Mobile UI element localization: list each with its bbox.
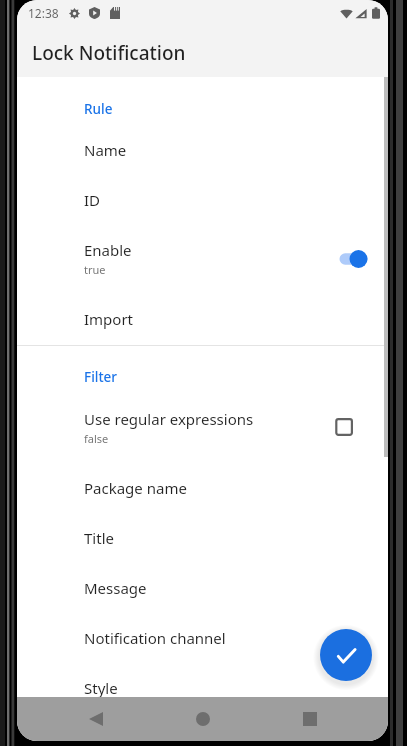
button[interactable]: Name	[17, 124, 388, 174]
staticText: Use regular expressions	[84, 409, 254, 429]
button[interactable]: Enable	[17, 224, 388, 293]
staticText: Lock Notification	[32, 40, 186, 66]
button[interactable]: Package name	[17, 462, 388, 512]
button[interactable]: Notification channel	[17, 612, 388, 662]
button[interactable]: Import	[17, 293, 388, 343]
button[interactable]: Use regular expressions checkbox	[323, 405, 363, 445]
staticText: 12:38	[28, 5, 59, 21]
button[interactable]: Style	[17, 662, 388, 697]
button[interactable]: Home	[183, 699, 223, 739]
staticText: Filter	[84, 368, 118, 386]
staticText: Style	[84, 678, 118, 697]
button[interactable]: Recents	[290, 699, 330, 739]
button[interactable]: Title	[17, 512, 388, 562]
staticText: Import	[84, 309, 134, 329]
button[interactable]: Message	[17, 562, 388, 612]
staticText: Message	[84, 578, 147, 598]
staticText: Name	[84, 140, 127, 160]
button[interactable]: ID	[17, 174, 388, 224]
staticText: Package name	[84, 478, 187, 498]
button[interactable]: Use regular expressions	[17, 393, 388, 462]
button[interactable]: Enable toggle	[322, 242, 368, 276]
staticText: Notification channel	[84, 628, 226, 648]
staticText: false	[84, 431, 109, 446]
staticText: Title	[84, 528, 114, 548]
staticText: ID	[84, 190, 101, 210]
staticText: true	[84, 262, 106, 277]
staticText: Rule	[84, 100, 113, 118]
button[interactable]: Confirm	[320, 629, 372, 681]
staticText: Enable	[84, 240, 132, 260]
button[interactable]: Back	[76, 699, 116, 739]
